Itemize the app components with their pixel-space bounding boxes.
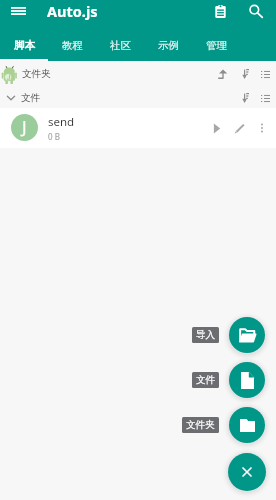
staticText: 管理	[206, 39, 227, 52]
staticText: 教程	[62, 39, 83, 52]
button[interactable]: 文件夹	[182, 417, 219, 433]
button[interactable]: Logs	[206, 0, 234, 24]
button[interactable]: More options	[252, 118, 272, 138]
staticText: send	[48, 114, 75, 130]
button[interactable]: 教程	[48, 33, 96, 61]
button[interactable]: Close menu	[228, 453, 266, 491]
button[interactable]: Menu	[6, 0, 30, 23]
staticText: 社区	[110, 39, 131, 52]
staticText: Auto.js	[47, 1, 98, 21]
button[interactable]: 导入	[192, 327, 219, 343]
button[interactable]: 文件	[0, 87, 276, 108]
button[interactable]: 脚本	[0, 33, 48, 61]
button[interactable]: Navigate up	[213, 64, 233, 84]
button[interactable]: 管理	[192, 33, 240, 61]
button[interactable]: 社区	[96, 33, 144, 61]
staticText: 文件夹	[22, 68, 51, 80]
button[interactable]	[229, 407, 265, 443]
button[interactable]: 示例	[144, 33, 192, 61]
staticText: 示例	[158, 39, 179, 52]
staticText: J	[22, 115, 27, 138]
button[interactable]	[229, 317, 265, 353]
staticText: 0 B	[48, 131, 60, 142]
button[interactable]: Run	[204, 116, 228, 140]
staticText: 文件	[196, 374, 216, 386]
button[interactable]: 文件	[192, 372, 219, 388]
staticText: 脚本	[14, 39, 35, 52]
button[interactable]: Search	[242, 0, 270, 24]
staticText: 文件	[21, 92, 41, 104]
button[interactable]: Sort	[234, 64, 254, 84]
button[interactable]: 文件夹	[0, 61, 276, 87]
button[interactable]: View options	[255, 88, 275, 108]
button[interactable]: View options	[255, 64, 275, 84]
button[interactable]	[229, 362, 265, 398]
button[interactable]: Edit	[228, 116, 252, 140]
button[interactable]: Sort	[234, 88, 254, 108]
staticText: 文件夹	[186, 419, 215, 431]
button[interactable]: J	[0, 108, 276, 148]
staticText: 导入	[196, 329, 216, 341]
